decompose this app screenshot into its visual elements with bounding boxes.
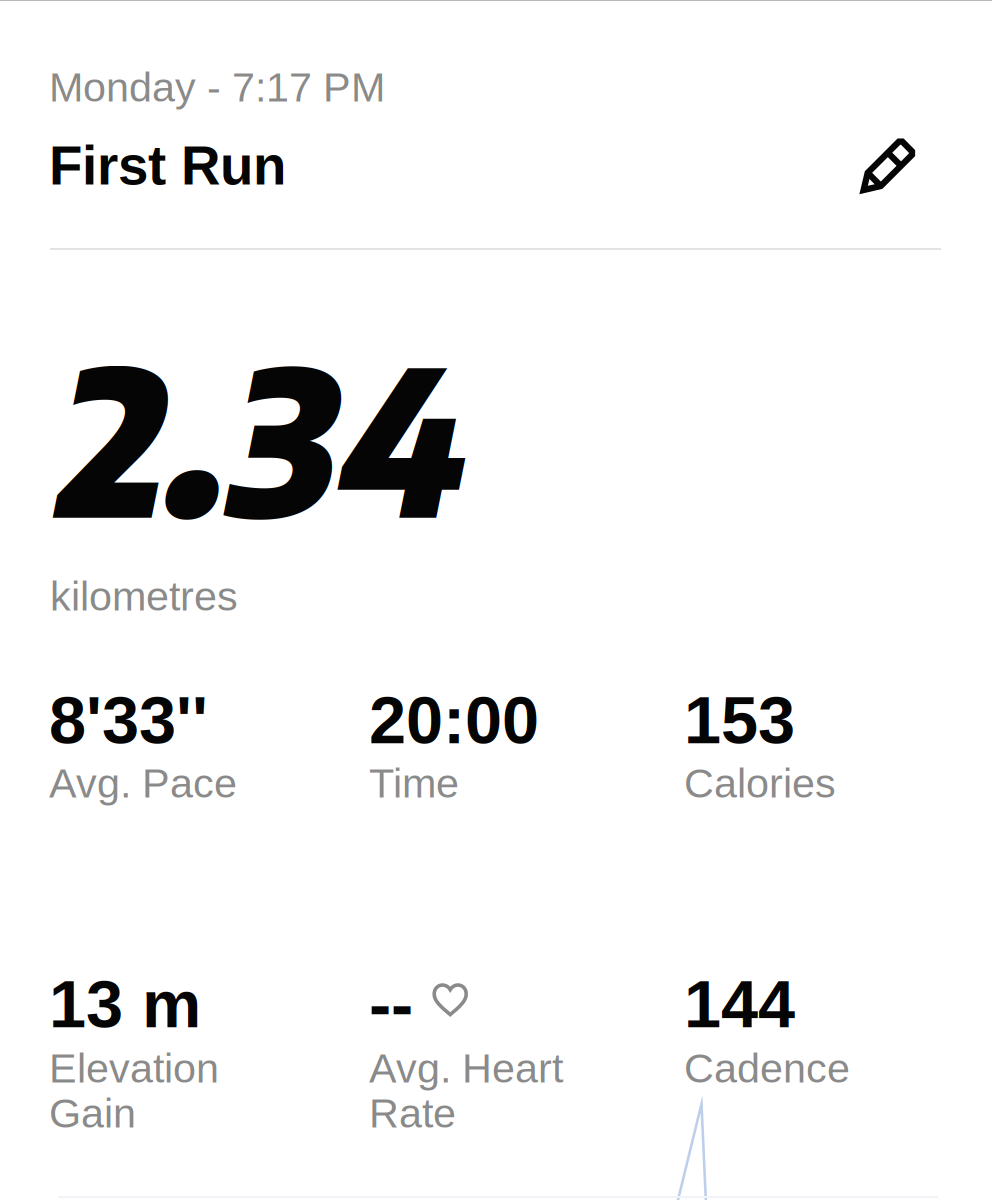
- staticText: First Run: [49, 135, 286, 196]
- staticText: 20:00: [369, 683, 539, 757]
- staticText: Monday - 7:17 PM: [49, 64, 385, 110]
- staticText: Avg. Pace: [49, 760, 237, 806]
- staticText: 8'33'': [49, 683, 208, 757]
- staticText: Elevation: [49, 1045, 219, 1091]
- staticText: 144: [684, 967, 795, 1041]
- button[interactable]: Edit run: [836, 116, 940, 216]
- staticText: Gain: [49, 1090, 136, 1136]
- staticText: Calories: [684, 760, 836, 806]
- staticText: Time: [369, 760, 459, 806]
- staticText: --: [369, 967, 413, 1041]
- staticText: Avg. Heart: [369, 1045, 563, 1091]
- staticText: kilometres: [50, 573, 238, 619]
- staticText: Rate: [369, 1090, 456, 1136]
- staticText: Cadence: [684, 1045, 850, 1091]
- staticText: 2.34: [49, 309, 456, 562]
- staticText: 153: [684, 683, 795, 757]
- staticText: 13 m: [49, 967, 201, 1041]
